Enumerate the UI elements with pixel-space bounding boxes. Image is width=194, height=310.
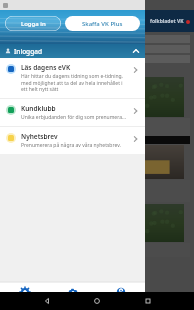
other: Collapse <box>132 47 140 55</box>
staticText: Inloggad <box>14 47 42 56</box>
button[interactable]: Kundklubb <box>0 99 145 126</box>
other: Open Läs dagens eVK <box>131 66 139 74</box>
button[interactable]: Nyhetsbrev <box>0 127 145 154</box>
other: Back <box>43 297 51 305</box>
other: Open Nyhetsbrev <box>131 135 139 143</box>
staticText: Unika erbjudanden för dig som prenumeran… <box>21 114 128 121</box>
other: Home <box>93 297 101 305</box>
staticText: Nyhetsbrev <box>21 132 58 141</box>
other: Inställningar <box>20 287 30 297</box>
button[interactable]: Inloggad <box>0 44 145 58</box>
other: Open Kundklubb <box>131 107 139 115</box>
button[interactable]: Läs dagens eVK <box>0 58 145 98</box>
button[interactable]: Frågor & Svar <box>97 282 145 310</box>
staticText: folkbladet VK <box>150 18 184 25</box>
button[interactable]: Tipsa VK <box>49 282 97 310</box>
staticText: Logga in <box>21 20 46 28</box>
other: Frågor & Svar <box>116 287 126 297</box>
staticText: Prenumerera på några av våra nyhetsbrev. <box>21 142 121 149</box>
button[interactable]: Skaffa VK Plus <box>65 16 140 31</box>
staticText: Kundklubb <box>21 104 56 113</box>
staticText: Skaffa VK Plus <box>82 20 123 28</box>
other: Recents <box>144 297 152 305</box>
button[interactable]: Logga in <box>5 16 61 31</box>
other: Tipsa VK <box>68 287 78 297</box>
staticText: Här hittar du dagens tidning som e-tidni… <box>21 73 128 93</box>
staticText: Läs dagens eVK <box>21 63 71 72</box>
button[interactable]: Inställningar <box>0 282 49 310</box>
